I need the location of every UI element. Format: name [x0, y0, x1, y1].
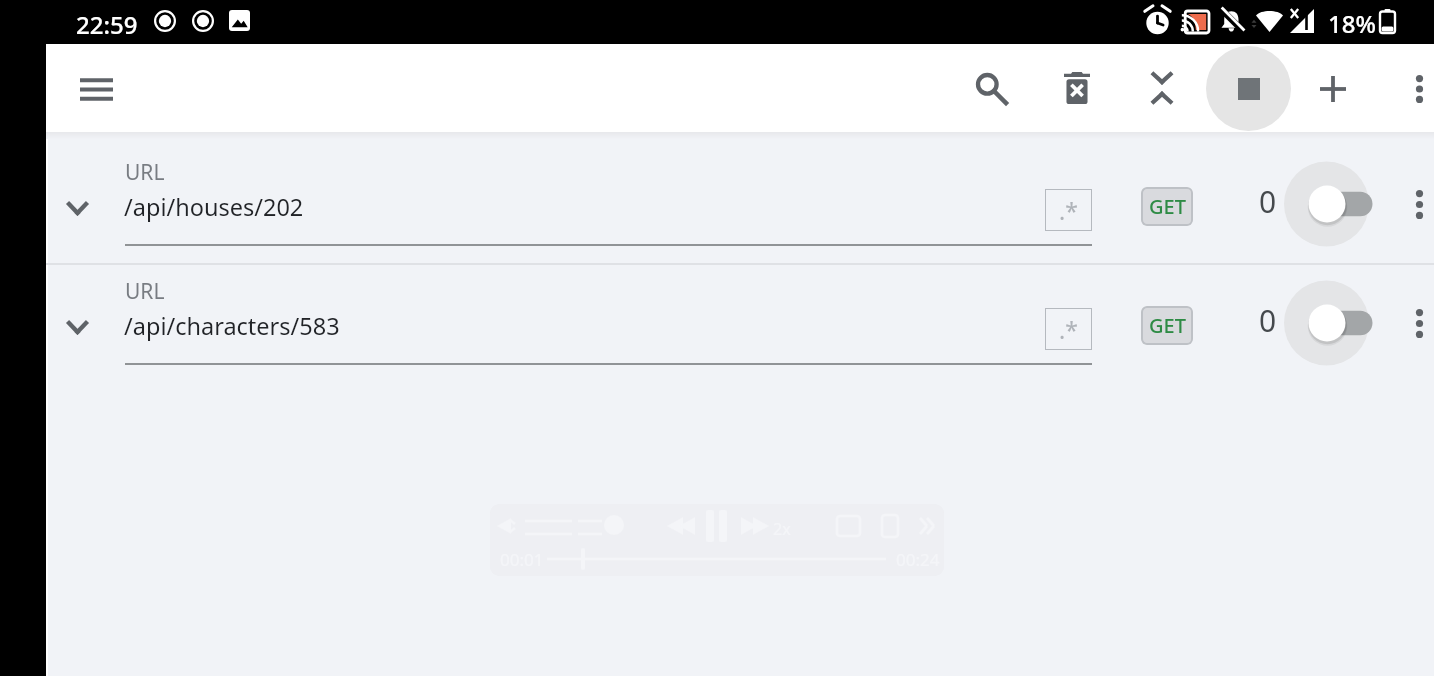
staticText: URL	[125, 277, 165, 306]
staticText: GET	[1149, 193, 1186, 220]
staticText: 0	[1259, 181, 1277, 222]
button[interactable]: Rule options	[1393, 297, 1434, 349]
staticText: 22:59	[76, 8, 138, 41]
staticText: GET	[1149, 312, 1186, 339]
staticText: .*	[1059, 195, 1078, 226]
button[interactable]: Add	[1304, 60, 1362, 118]
button[interactable]: Search	[962, 59, 1020, 117]
button[interactable]: Expand	[48, 179, 106, 237]
staticText: /api/characters/583	[124, 310, 340, 342]
button[interactable]: Menu	[64, 57, 128, 121]
staticText: 18%	[1328, 7, 1376, 40]
button[interactable]: Clear all	[1048, 59, 1106, 117]
staticText: 0	[1259, 300, 1277, 341]
button[interactable]: Enable rule	[1280, 275, 1376, 371]
button[interactable]: Collapse all	[1133, 59, 1191, 117]
button[interactable]: Rule options	[1393, 178, 1434, 230]
button[interactable]: GET	[1141, 306, 1193, 345]
staticText: .*	[1059, 314, 1078, 345]
button[interactable]: Enable rule	[1280, 156, 1376, 252]
button[interactable]: More options	[1393, 63, 1434, 115]
button[interactable]: Use regex	[1045, 189, 1092, 231]
button[interactable]: Use regex	[1045, 308, 1092, 350]
button[interactable]: Expand	[48, 298, 106, 356]
staticText: /api/houses/202	[124, 191, 304, 223]
button[interactable]: GET	[1141, 187, 1193, 226]
button[interactable]: Stop	[1206, 46, 1291, 131]
staticText: URL	[125, 158, 165, 187]
